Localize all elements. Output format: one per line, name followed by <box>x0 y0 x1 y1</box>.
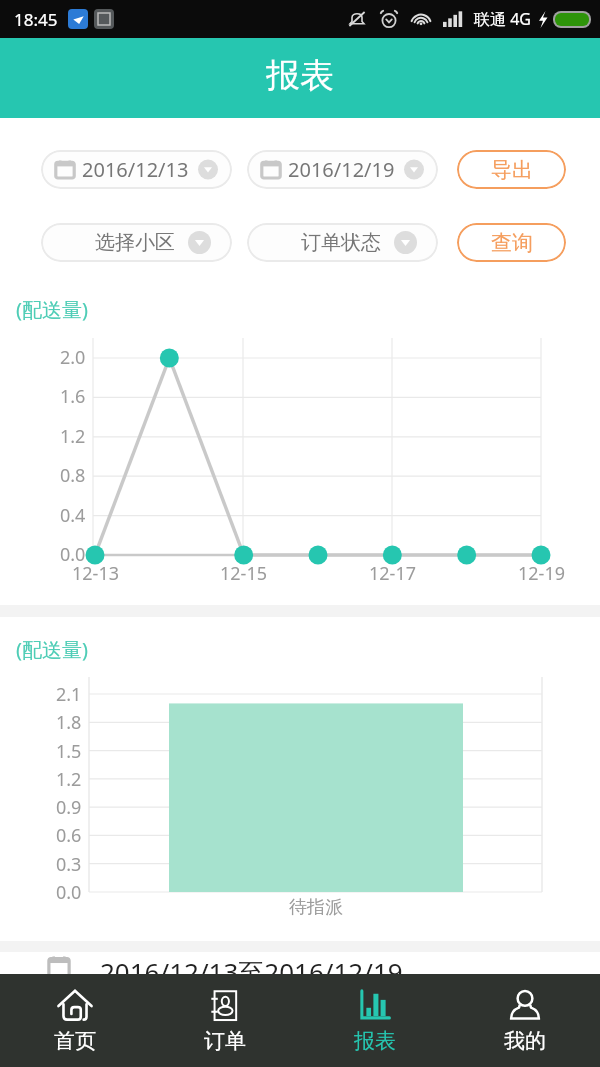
button[interactable]: 查询 <box>457 223 566 262</box>
staticText: 12-17 <box>369 561 416 586</box>
button[interactable]: 首页 <box>0 974 150 1067</box>
staticText: 0.0 <box>56 880 82 905</box>
button[interactable]: 我的 <box>450 974 600 1067</box>
staticText: 查询 <box>491 230 533 256</box>
staticText: 2.1 <box>56 682 82 707</box>
staticText: 报表 <box>266 54 334 97</box>
button[interactable]: 2016/12/13至2016/12/19 <box>0 952 600 1008</box>
button[interactable]: 订单 <box>150 974 300 1067</box>
staticText: 订单状态 <box>301 230 381 255</box>
staticText: 导出 <box>491 157 533 183</box>
staticText: 1.2 <box>56 767 82 792</box>
button[interactable]: 2016/12/19 <box>247 150 438 189</box>
button[interactable]: 报表 <box>300 974 450 1067</box>
staticText: 2016/12/13至2016/12/19 <box>100 954 403 990</box>
staticText: 0.4 <box>60 503 86 528</box>
staticText: 18:45 <box>14 8 58 31</box>
staticText: 0.3 <box>56 852 82 877</box>
staticText: 报表 <box>354 1028 396 1054</box>
staticText: 12-19 <box>518 561 565 586</box>
staticText: 我的 <box>504 1028 546 1054</box>
staticText: 联通 4G <box>474 8 531 30</box>
button[interactable]: 2016/12/13 <box>41 150 232 189</box>
staticText: 待指派 <box>289 896 343 919</box>
staticText: 0.0 <box>60 542 86 567</box>
staticText: 订单 <box>204 1028 246 1054</box>
staticText: 0.8 <box>60 463 86 488</box>
staticText: 1.2 <box>60 424 86 449</box>
button[interactable]: 选择小区 <box>41 223 232 262</box>
button[interactable]: 导出 <box>457 150 566 189</box>
staticText: 0.6 <box>56 823 82 848</box>
staticText: 2016/12/13 <box>82 156 189 183</box>
staticText: 选择小区 <box>95 230 175 255</box>
staticText: 2.0 <box>60 345 86 370</box>
staticText: 2016/12/19 <box>288 156 395 183</box>
staticText: 1.8 <box>56 710 82 735</box>
staticText: (配送量) <box>16 296 88 323</box>
button[interactable]: 订单状态 <box>247 223 438 262</box>
staticText: 12-13 <box>72 561 119 586</box>
staticText: 首页 <box>54 1028 96 1054</box>
staticText: (配送量) <box>16 636 88 663</box>
staticText: 12-15 <box>220 561 267 586</box>
staticText: 1.6 <box>60 384 86 409</box>
staticText: 1.5 <box>56 739 82 764</box>
staticText: 0.9 <box>56 795 82 820</box>
